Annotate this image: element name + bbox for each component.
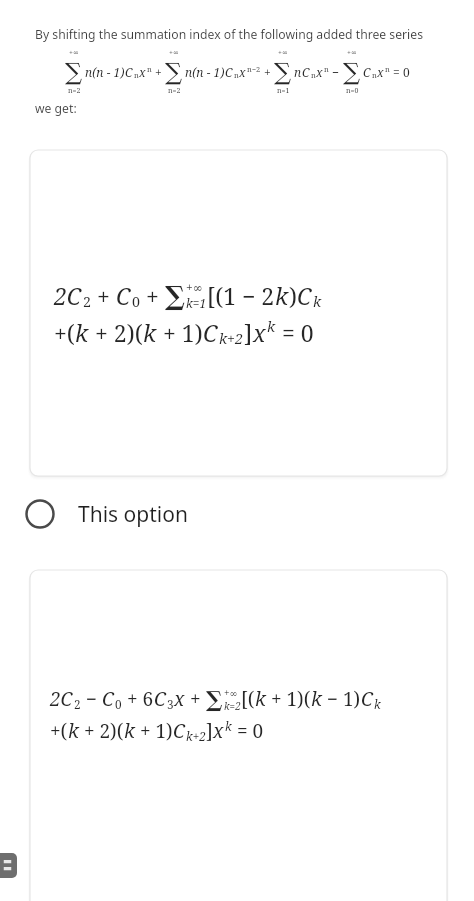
staticText: k [143,317,157,348]
staticText: n [147,64,152,74]
staticText: 2 [74,696,81,712]
staticText: +∞ [186,279,203,295]
staticText: k [311,686,322,712]
staticText: 0 [115,696,122,712]
staticText: n [324,64,329,74]
staticText: − 1) [322,686,361,712]
staticText: +∞ [69,48,79,58]
staticText: 0 [132,292,140,311]
staticText: n [134,70,139,80]
staticText: + [152,64,165,80]
staticText: n [385,64,390,74]
staticText: ∑ [343,58,361,86]
staticText: 2C [54,280,82,311]
staticText: + [185,686,206,712]
staticText: n=2 [168,86,181,96]
staticText: k [75,317,89,348]
staticText: k+2 [186,728,206,744]
staticText: [( [241,686,255,712]
staticText: C [173,718,185,744]
staticText: n=1 [277,86,290,96]
staticText: x [174,686,185,712]
staticText: C [102,686,114,712]
other: Select this option [22,496,58,532]
staticText: C [302,64,310,80]
staticText: C [116,280,131,311]
staticText: we get: [35,100,77,117]
staticText: + [91,280,116,311]
staticText: ∑ [274,58,292,86]
staticText: C [297,280,312,311]
button[interactable]: 2C [30,570,447,901]
staticText: + 1) [135,718,173,744]
staticText: C [125,64,133,80]
staticText: ] [206,718,213,744]
staticText: x [316,64,323,80]
staticText: C [225,64,233,80]
staticText: n [311,70,316,80]
staticText: n [294,64,302,80]
staticText: +( [54,317,75,348]
staticText: n−2 [247,64,261,74]
staticText: +∞ [169,48,179,58]
staticText: + 6 [122,686,154,712]
staticText: k [255,686,266,712]
staticText: n=0 [346,86,359,96]
staticText: 3 [167,696,174,712]
staticText: k=2 [224,699,241,712]
staticText: k=1 [186,295,207,311]
staticText: ∑ [206,686,223,712]
staticText: ] [244,317,253,348]
staticText: ) [289,280,297,311]
button[interactable]: Select this option [22,492,322,536]
staticText: − [81,686,102,712]
staticText: k+2 [219,329,244,348]
staticText: k [313,292,322,311]
staticText: = 0 [232,718,264,744]
staticText: C [363,64,371,80]
staticText: x [253,317,266,348]
staticText: x [139,64,146,80]
staticText: k [124,718,135,744]
button[interactable]: 2C [30,150,447,476]
staticText: n [372,70,377,80]
staticText: x [239,64,246,80]
staticText: + [261,64,274,80]
staticText: + 2)( [89,317,143,348]
staticText: + [140,280,165,311]
staticText: ∑ [165,280,185,311]
staticText: + 2)( [79,718,124,744]
staticText: k [275,280,289,311]
staticText: k [267,317,276,336]
staticText: − [329,64,343,80]
staticText: +∞ [347,48,357,58]
staticText: This option [78,500,188,529]
staticText: = 0 [276,317,314,348]
staticText: 2 [83,292,91,311]
staticText: ∑ [65,58,83,86]
staticText: = 0 [390,64,410,80]
staticText: n [234,70,239,80]
staticText: C [361,686,373,712]
staticText: x [377,64,384,80]
staticText: x [213,718,224,744]
staticText: 2C [50,686,73,712]
staticText: k [374,696,381,712]
staticText: k [68,718,79,744]
staticText: k [225,718,232,734]
button[interactable]: Menu [0,853,17,878]
staticText: C [154,686,166,712]
staticText: + 1)( [266,686,311,712]
staticText: +∞ [278,48,288,58]
staticText: n(n − 1) [85,64,125,80]
staticText: C [203,317,218,348]
staticText: +∞ [224,686,238,699]
staticText: n=2 [68,86,81,96]
staticText: ∑ [165,58,183,86]
staticText: By shifting the summation index of the f… [35,26,423,43]
staticText: n(n − 1) [185,64,225,80]
staticText: + 1) [157,317,203,348]
staticText: +( [50,718,68,744]
staticText: [(1 − 2 [207,280,275,311]
